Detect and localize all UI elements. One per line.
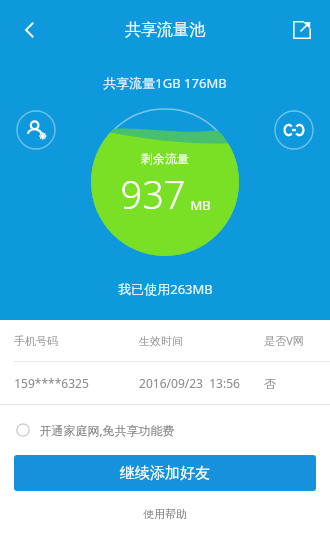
staticText: 使用帮助: [143, 507, 187, 521]
button[interactable]: 开通家庭网,免共享功能费: [0, 405, 330, 455]
staticText: 是否V网: [264, 333, 304, 348]
staticText: 937: [120, 168, 186, 220]
staticText: MB: [190, 196, 211, 214]
staticText: 剩余流量: [141, 151, 189, 166]
button[interactable]: Manage members: [16, 110, 56, 150]
staticText: 共享流量池: [125, 20, 205, 40]
staticText: 2016/09/23 13:56: [139, 375, 240, 391]
staticText: 生效时间: [139, 334, 183, 348]
button[interactable]: 使用帮助: [129, 504, 201, 524]
button[interactable]: Share link: [274, 110, 314, 150]
button[interactable]: 159****6325: [0, 362, 330, 404]
staticText: 开通家庭网,免共享功能费: [39, 422, 175, 438]
staticText: 否: [264, 376, 276, 391]
button[interactable]: Share: [280, 8, 324, 52]
button[interactable]: 继续添加好友: [14, 455, 316, 491]
staticText: 159****6325: [14, 375, 89, 391]
button[interactable]: Back: [6, 6, 54, 54]
staticText: 我已使用263MB: [118, 280, 213, 298]
staticText: 共享流量1GB 176MB: [103, 74, 227, 92]
staticText: 继续添加好友: [120, 464, 210, 483]
staticText: 手机号码: [14, 334, 58, 348]
